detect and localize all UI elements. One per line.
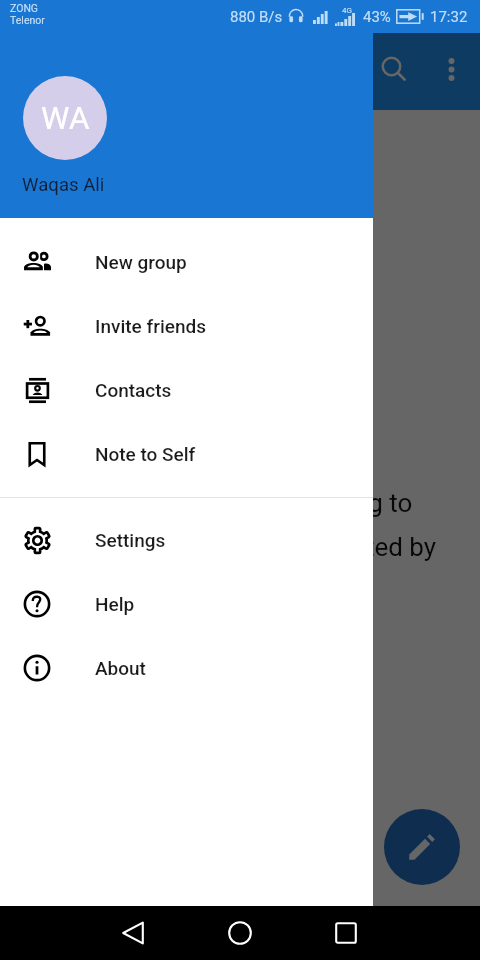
staticText: Start chatting to xyxy=(226,488,413,518)
button[interactable]: Home xyxy=(216,915,264,951)
staticText: 880 B/s xyxy=(230,8,283,26)
button[interactable]: Note to Self xyxy=(0,422,373,486)
staticText: Help xyxy=(95,593,135,615)
staticText: Contacts xyxy=(95,379,172,401)
staticText: Settings xyxy=(95,529,166,551)
staticText: 17:32 xyxy=(430,8,468,26)
button[interactable]: New group xyxy=(0,230,373,294)
staticText: Telenor xyxy=(10,14,45,26)
staticText: ZONG xyxy=(10,2,39,14)
staticText: Invite friends xyxy=(95,315,206,337)
staticText: 43% xyxy=(363,8,391,26)
staticText: About xyxy=(95,657,146,679)
button[interactable]: Recents xyxy=(322,915,370,951)
button[interactable]: Search xyxy=(370,45,418,93)
staticText: WA xyxy=(41,99,90,137)
staticText: Waqas Ali xyxy=(22,174,105,196)
button[interactable]: About xyxy=(0,636,373,700)
button[interactable]: Invite friends xyxy=(0,294,373,358)
button[interactable]: Back xyxy=(109,915,157,951)
button[interactable]: More options xyxy=(427,45,475,93)
staticText: Note to Self xyxy=(95,443,196,465)
staticText: 4G xyxy=(342,6,352,15)
staticText: New group xyxy=(95,251,187,273)
staticText: be contacted by xyxy=(252,532,437,562)
button[interactable]: Help xyxy=(0,572,373,636)
button[interactable]: Settings xyxy=(0,508,373,572)
button[interactable]: New chat xyxy=(384,809,460,885)
button[interactable]: Contacts xyxy=(0,358,373,422)
